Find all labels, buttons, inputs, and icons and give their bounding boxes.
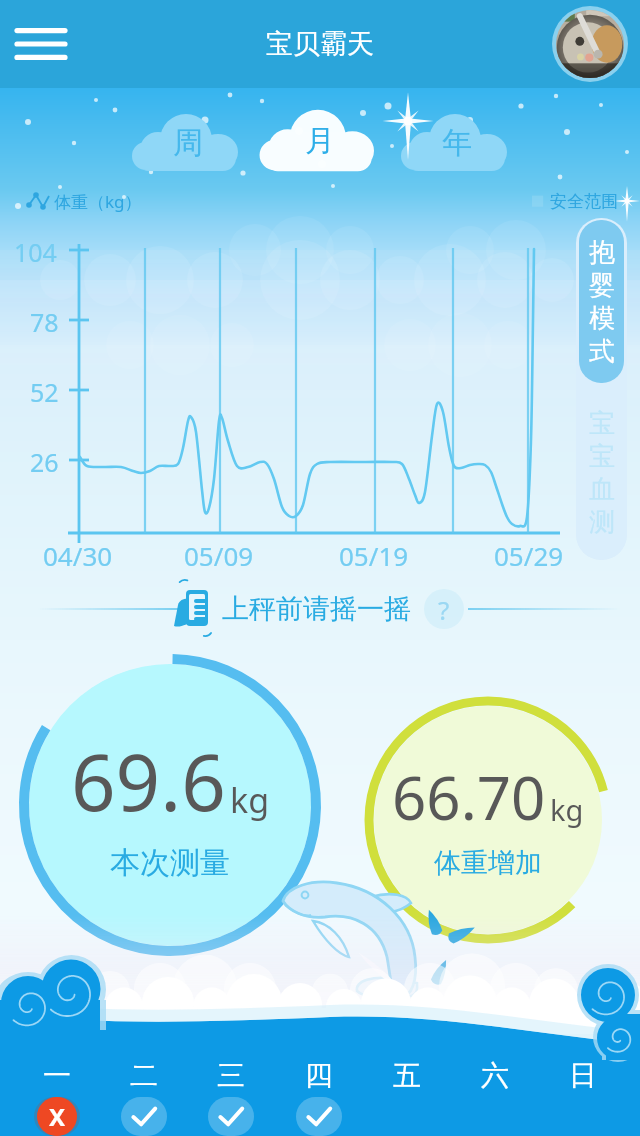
button[interactable]: 二 — [100, 1056, 187, 1136]
button[interactable]: 六 — [451, 1056, 539, 1136]
button[interactable]: 月 — [280, 110, 360, 172]
staticText: 周 — [173, 124, 203, 162]
staticText: 式 — [589, 335, 615, 368]
button[interactable]: 三 — [187, 1056, 275, 1136]
staticText: 52 — [30, 375, 59, 409]
staticText: 体重（kg） — [54, 190, 142, 213]
staticText: 26 — [30, 445, 59, 479]
staticText: 宝 — [589, 440, 615, 473]
staticText: 05/29 — [494, 538, 564, 573]
staticText: ? — [438, 592, 450, 627]
staticText: 安全范围 — [550, 191, 618, 212]
staticText: 三 — [217, 1058, 245, 1093]
staticText: 上秤前请摇一摇 — [222, 592, 411, 626]
staticText: 66.70 — [392, 756, 546, 838]
button[interactable]: Help — [424, 589, 464, 629]
staticText: 104 — [14, 235, 57, 269]
staticText: 78 — [30, 305, 59, 339]
staticText: 月 — [305, 122, 335, 160]
staticText: 本次测量 — [110, 844, 230, 882]
staticText: 05/19 — [339, 538, 409, 573]
staticText: 测 — [589, 506, 615, 539]
button[interactable]: 宝 — [576, 388, 627, 558]
staticText: X — [49, 1100, 66, 1133]
staticText: 体重增加 — [434, 846, 542, 880]
button[interactable]: 一 — [13, 1056, 100, 1136]
staticText: 04/30 — [43, 538, 113, 573]
staticText: 六 — [481, 1058, 509, 1093]
button[interactable]: 五 — [363, 1056, 451, 1136]
staticText: 模 — [589, 302, 615, 335]
staticText: kg — [550, 790, 584, 829]
staticText: 五 — [393, 1058, 421, 1093]
staticText: 69.6 — [71, 728, 226, 834]
staticText: 宝贝霸天 — [266, 27, 374, 61]
staticText: 血 — [589, 473, 615, 506]
button[interactable]: Menu — [8, 11, 74, 77]
button[interactable]: Profile — [552, 6, 628, 82]
staticText: 宝 — [589, 407, 615, 440]
staticText: 05/09 — [184, 538, 254, 573]
staticText: 四 — [305, 1058, 333, 1093]
button[interactable]: 年 — [417, 112, 497, 174]
staticText: 年 — [442, 124, 472, 162]
staticText: 抱 — [589, 236, 615, 269]
button[interactable]: 69.6 — [24, 659, 316, 951]
staticText: 日 — [569, 1058, 597, 1093]
button[interactable]: 周 — [148, 112, 228, 174]
staticText: 一 — [43, 1058, 71, 1093]
staticText: kg — [230, 777, 270, 823]
button[interactable]: 66.70 — [369, 699, 607, 937]
button[interactable]: 日 — [539, 1056, 627, 1136]
staticText: 婴 — [589, 269, 615, 302]
button[interactable]: 四 — [275, 1056, 363, 1136]
button[interactable]: 抱 — [579, 220, 624, 383]
staticText: 二 — [130, 1058, 158, 1093]
